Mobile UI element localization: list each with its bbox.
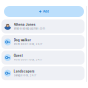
staticText: Landscapers bbox=[14, 70, 35, 73]
staticText: Front door lock, 24/7 bbox=[14, 42, 42, 46]
staticText: Guest bbox=[14, 54, 23, 57]
staticText: Add bbox=[43, 10, 49, 13]
button[interactable]: Dog walker bbox=[1, 35, 84, 49]
button[interactable]: Landscapers bbox=[1, 66, 84, 80]
staticText: Dog walker bbox=[14, 38, 31, 42]
button[interactable]: Athena Jones bbox=[1, 19, 84, 33]
button[interactable]: Guest bbox=[1, 51, 84, 65]
staticText: Front door lock, 24/7 bbox=[14, 58, 42, 61]
button[interactable]: Add bbox=[4, 6, 84, 17]
staticText: Athena Jones bbox=[14, 23, 36, 26]
staticText: amabelladeep@gmail.com bbox=[14, 27, 45, 30]
staticText: Garage lock, 24/7 bbox=[14, 74, 36, 77]
